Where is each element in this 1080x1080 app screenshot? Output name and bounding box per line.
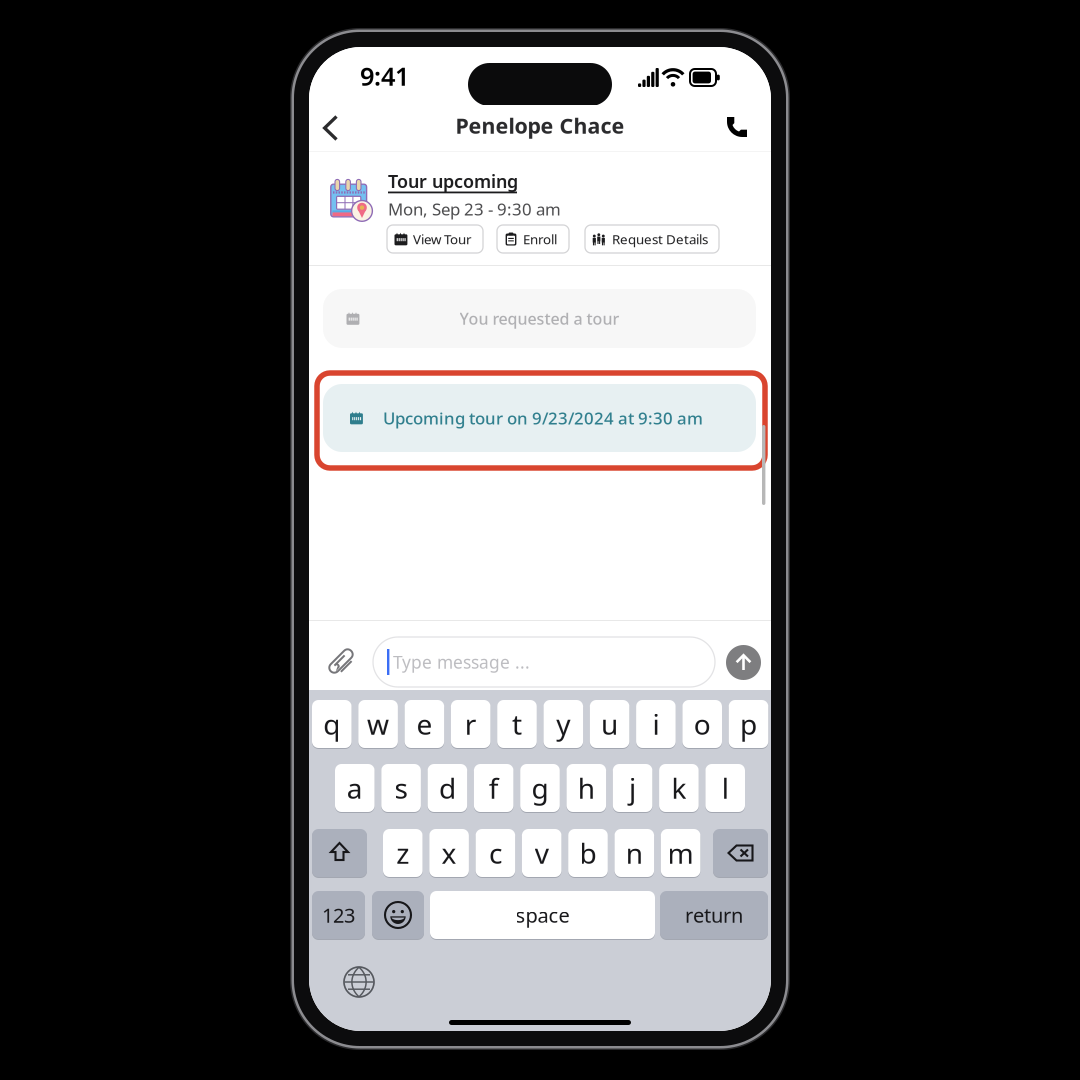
staticText: c bbox=[489, 834, 502, 872]
button[interactable]: space bbox=[430, 891, 655, 940]
staticText: y bbox=[556, 705, 570, 743]
staticText: Upcoming tour on 9/23/2024 at 9:30 am bbox=[383, 407, 703, 429]
button[interactable]: Enroll bbox=[497, 225, 569, 253]
staticText: x bbox=[442, 834, 457, 872]
staticText: q bbox=[323, 705, 340, 743]
staticText: o bbox=[694, 705, 711, 743]
staticText: return bbox=[685, 901, 743, 929]
staticText: Penelope Chace bbox=[455, 111, 624, 140]
button[interactable]: o bbox=[682, 700, 722, 749]
button[interactable]: s bbox=[381, 764, 421, 813]
button[interactable]: d bbox=[428, 764, 467, 813]
button[interactable]: g bbox=[520, 764, 560, 813]
staticText: space bbox=[515, 901, 569, 929]
button[interactable]: 123 bbox=[312, 891, 365, 940]
button[interactable]: return bbox=[660, 891, 768, 940]
button[interactable]: Delete bbox=[713, 829, 768, 878]
staticText: u bbox=[601, 705, 618, 743]
staticText: t bbox=[512, 705, 522, 743]
staticText: b bbox=[579, 834, 596, 872]
staticText: j bbox=[629, 769, 636, 807]
button[interactable]: p bbox=[729, 700, 768, 749]
staticText: Tour upcoming bbox=[388, 169, 518, 193]
staticText: w bbox=[367, 705, 389, 743]
staticText: Enroll bbox=[523, 230, 557, 248]
staticText: e bbox=[416, 705, 432, 743]
button[interactable]: l bbox=[705, 764, 745, 813]
button[interactable]: Request Details bbox=[585, 225, 719, 253]
button[interactable]: Attach bbox=[325, 645, 357, 677]
staticText: 123 bbox=[322, 901, 355, 929]
button[interactable]: k bbox=[659, 764, 699, 813]
staticText: You requested a tour bbox=[459, 308, 619, 329]
button[interactable]: Send bbox=[726, 645, 761, 680]
button[interactable]: Back bbox=[313, 105, 351, 152]
staticText: p bbox=[740, 705, 757, 743]
button[interactable]: f bbox=[474, 764, 513, 813]
staticText: r bbox=[465, 705, 477, 743]
staticText: Type message ... bbox=[393, 650, 530, 674]
button[interactable]: n bbox=[614, 829, 654, 878]
button[interactable]: w bbox=[358, 700, 398, 749]
staticText: View Tour bbox=[413, 230, 472, 248]
button[interactable]: b bbox=[568, 829, 608, 878]
staticText: v bbox=[535, 834, 549, 872]
button[interactable]: c bbox=[476, 829, 515, 878]
staticText: Mon, Sep 23 - 9:30 am bbox=[388, 198, 561, 220]
button[interactable]: Shift bbox=[312, 829, 367, 878]
button[interactable]: t bbox=[497, 700, 537, 749]
staticText: 9:41 bbox=[360, 59, 409, 93]
staticText: n bbox=[626, 834, 643, 872]
staticText: h bbox=[578, 769, 595, 807]
staticText: Request Details bbox=[612, 230, 708, 248]
button[interactable]: a bbox=[335, 764, 375, 813]
button[interactable]: e bbox=[405, 700, 444, 749]
button[interactable]: y bbox=[543, 700, 583, 749]
staticText: l bbox=[722, 769, 729, 807]
staticText: d bbox=[439, 769, 456, 807]
staticText: z bbox=[396, 834, 409, 872]
button[interactable]: u bbox=[590, 700, 629, 749]
staticText: g bbox=[531, 769, 548, 807]
button[interactable]: x bbox=[429, 829, 469, 878]
button[interactable]: Call bbox=[715, 105, 759, 152]
button[interactable]: i bbox=[636, 700, 676, 749]
button[interactable]: m bbox=[661, 829, 700, 878]
button[interactable]: j bbox=[613, 764, 652, 813]
button[interactable]: Upcoming tour on 9/23/2024 at 9:30 am bbox=[323, 384, 756, 452]
button[interactable]: v bbox=[522, 829, 561, 878]
staticText: s bbox=[395, 769, 408, 807]
button[interactable]: View Tour bbox=[387, 225, 483, 253]
button[interactable]: r bbox=[451, 700, 490, 749]
button[interactable]: Switch keyboard bbox=[342, 965, 376, 999]
staticText: f bbox=[489, 769, 499, 807]
staticText: m bbox=[668, 834, 694, 872]
staticText: i bbox=[652, 705, 659, 743]
button[interactable]: z bbox=[383, 829, 423, 878]
button[interactable]: Emoji bbox=[372, 891, 424, 940]
button[interactable]: h bbox=[566, 764, 606, 813]
staticText: a bbox=[347, 769, 363, 807]
staticText: k bbox=[671, 769, 686, 807]
button[interactable]: q bbox=[312, 700, 352, 749]
button[interactable]: You requested a tour bbox=[323, 289, 756, 348]
